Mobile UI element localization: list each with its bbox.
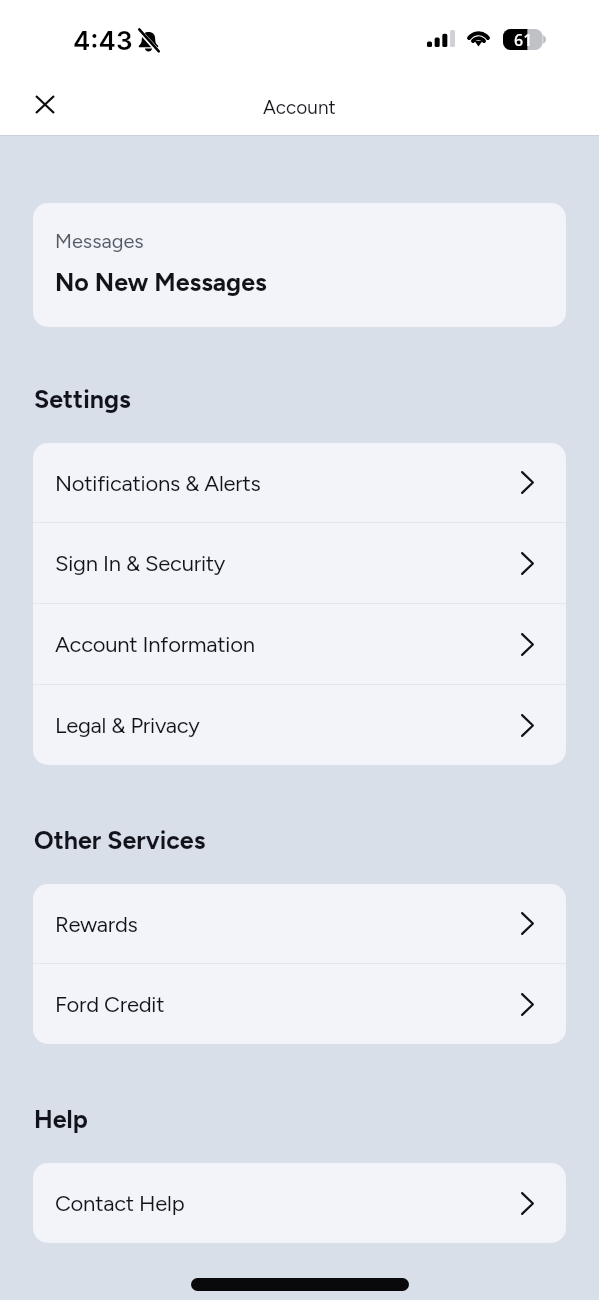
button[interactable]: Rewards [33,884,566,963]
staticText: Help [34,1104,88,1134]
button[interactable]: Ford Credit [33,964,566,1044]
button[interactable]: Legal & Privacy [33,685,566,765]
button[interactable]: Messages [33,203,566,327]
staticText: No New Messages [55,267,267,297]
staticText: 4:43 [73,25,133,56]
staticText: Sign In & Security [55,550,226,576]
staticText: Notifications & Alerts [55,470,261,496]
button[interactable]: Sign In & Security [33,523,566,603]
button[interactable]: Account Information [33,604,566,684]
staticText: Settings [34,384,131,414]
staticText: Legal & Privacy [55,712,200,738]
staticText: Account Information [55,631,255,657]
staticText: Contact Help [55,1190,185,1216]
button[interactable]: Contact Help [33,1163,566,1243]
staticText: 61 [514,29,533,50]
staticText: Messages [55,229,144,253]
button[interactable]: Notifications & Alerts [33,443,566,522]
button[interactable]: Close [21,81,68,128]
staticText: Account [263,96,336,119]
staticText: Other Services [34,825,206,855]
staticText: Ford Credit [55,991,165,1017]
staticText: Rewards [55,911,138,937]
